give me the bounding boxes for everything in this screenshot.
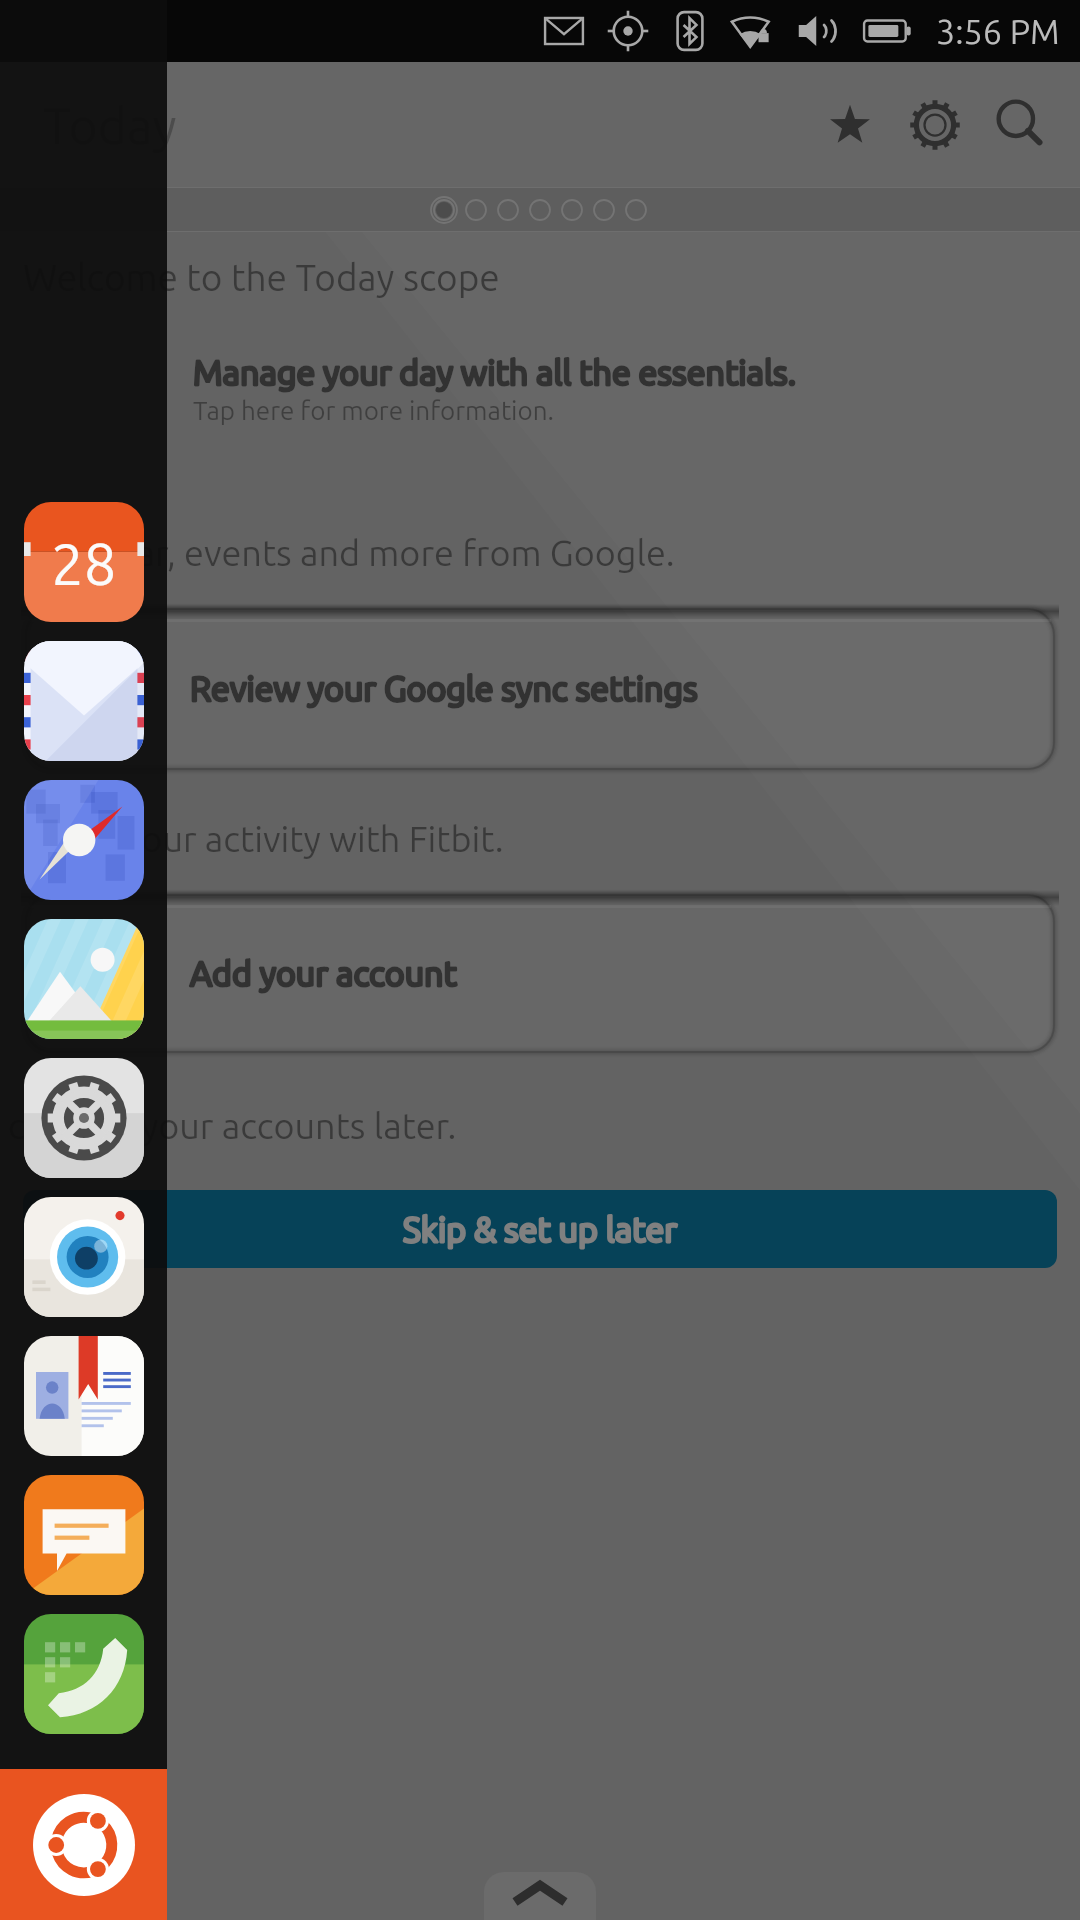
button[interactable]: Settings — [892, 62, 977, 187]
button[interactable]: Search — [977, 62, 1062, 187]
staticText: Skip & set up later — [403, 1210, 678, 1248]
button[interactable]: Add your account — [21, 890, 1059, 1057]
staticText: Manage your day with all the essentials. — [193, 353, 797, 391]
button[interactable]: Ubuntu home — [0, 1769, 167, 1920]
staticText: Calendar, events and more from Google. — [25, 532, 675, 572]
staticText: 3:56 PM — [936, 12, 1060, 50]
button[interactable]: Messages — [24, 1475, 144, 1595]
staticText: Skip & set up later — [403, 1210, 678, 1248]
staticText: Track your activity with Fitbit. — [30, 818, 504, 858]
staticText: Tap here for more information. — [193, 396, 554, 425]
button[interactable]: Favorites — [807, 62, 892, 187]
staticText: Review your Google sync settings — [190, 669, 698, 707]
button[interactable]: Gallery — [24, 919, 144, 1039]
button[interactable]: Phone — [24, 1614, 144, 1734]
button[interactable]: Show bottom edge — [484, 1872, 596, 1920]
button[interactable]: Calendar — [24, 502, 144, 622]
button[interactable]: Browser — [24, 780, 144, 900]
button[interactable]: Review your Google sync settings — [21, 604, 1059, 774]
staticText: 28 — [51, 531, 117, 596]
other: App launcher — [0, 0, 167, 1920]
staticText: Review your Google sync settings — [190, 669, 698, 707]
staticText: Add your account — [190, 954, 457, 992]
button[interactable]: System Settings — [24, 1058, 144, 1178]
button[interactable]: Camera — [24, 1197, 144, 1317]
staticText: Add your account — [190, 954, 457, 992]
button[interactable]: Skip & set up later — [23, 1190, 1057, 1268]
staticText: Today — [43, 97, 177, 153]
staticText: Manage your day with all the essentials. — [193, 353, 797, 391]
button[interactable]: Contacts — [24, 1336, 144, 1456]
staticText: You can add your accounts later. — [0, 1105, 457, 1145]
staticText: Welcome to the Today scope — [23, 257, 500, 298]
button[interactable]: Mail — [24, 641, 144, 761]
